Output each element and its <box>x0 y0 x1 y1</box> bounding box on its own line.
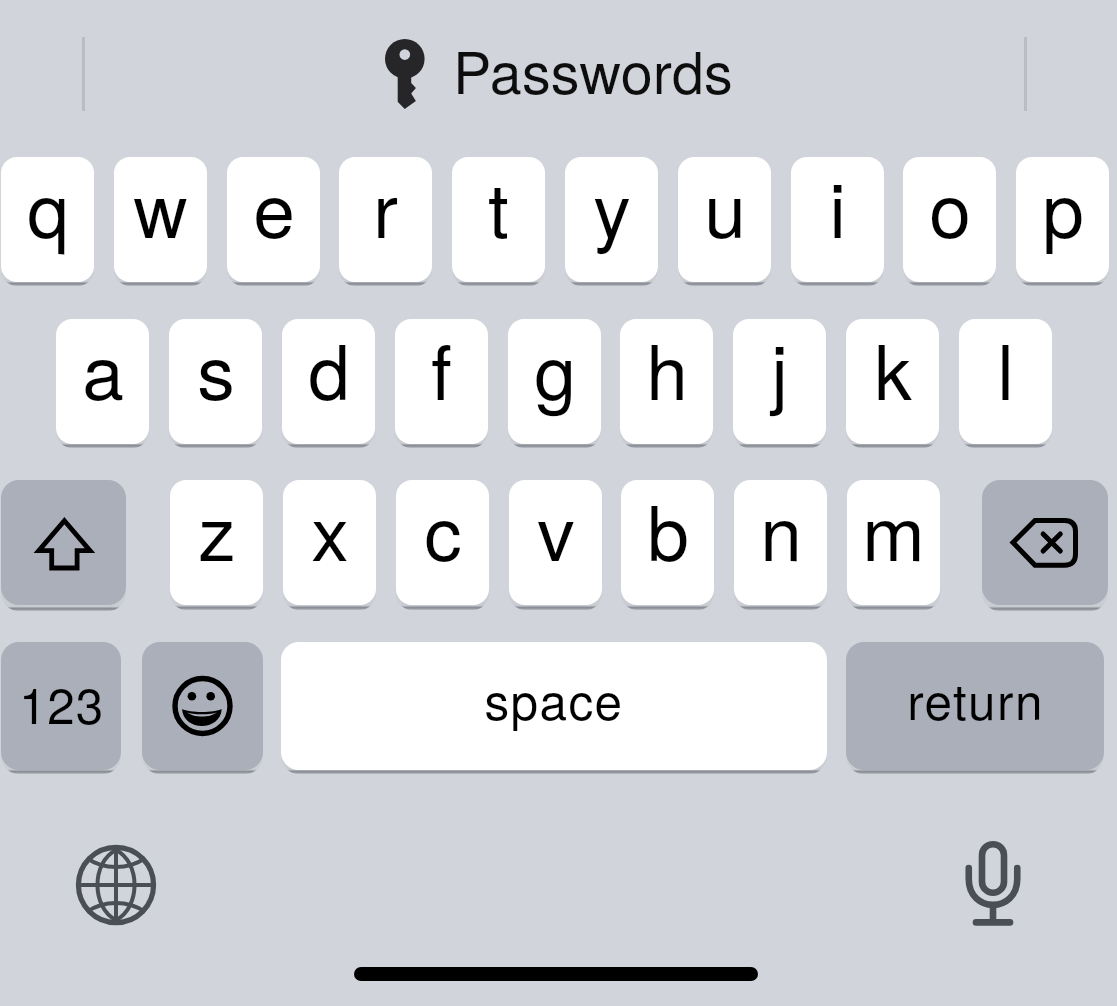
staticText: y <box>593 157 631 259</box>
button[interactable]: return <box>846 642 1104 770</box>
staticText: a <box>82 319 124 421</box>
button[interactable]: o <box>903 157 996 282</box>
staticText: z <box>198 480 236 582</box>
button[interactable]: g <box>508 319 601 444</box>
staticText: h <box>646 319 688 421</box>
staticText: f <box>431 319 452 421</box>
staticText: u <box>704 157 746 259</box>
staticText: t <box>488 157 509 259</box>
staticText: e <box>253 157 295 259</box>
button[interactable]: a <box>56 319 149 444</box>
button[interactable]: l <box>959 319 1052 444</box>
staticText: d <box>308 319 350 421</box>
button[interactable]: i <box>791 157 884 282</box>
button[interactable]: j <box>733 319 826 444</box>
staticText: n <box>760 480 802 582</box>
staticText: k <box>874 319 912 421</box>
staticText: x <box>311 480 349 582</box>
button[interactable]: r <box>339 157 432 282</box>
button[interactable]: z <box>170 480 263 605</box>
button[interactable]: n <box>734 480 827 605</box>
button[interactable]: u <box>678 157 771 282</box>
button[interactable]: t <box>452 157 545 282</box>
staticText: w <box>133 157 188 259</box>
button[interactable]: y <box>565 157 658 282</box>
button[interactable]: Shift <box>1 480 126 605</box>
staticText: g <box>534 319 576 421</box>
button[interactable]: Next keyboard <box>66 835 166 935</box>
button[interactable]: w <box>114 157 207 282</box>
staticText: return <box>907 663 1044 734</box>
button[interactable]: h <box>620 319 713 444</box>
button[interactable]: f <box>395 319 488 444</box>
button[interactable]: q <box>1 157 94 282</box>
staticText: c <box>424 480 462 582</box>
staticText: q <box>27 157 69 259</box>
staticText: Passwords <box>453 28 733 110</box>
staticText: i <box>829 157 846 259</box>
staticText: j <box>771 319 788 421</box>
staticText: b <box>647 480 689 582</box>
button[interactable]: p <box>1016 157 1109 282</box>
staticText: m <box>862 480 925 582</box>
button[interactable]: v <box>509 480 602 605</box>
button[interactable]: 123 <box>1 642 121 770</box>
button[interactable]: e <box>227 157 320 282</box>
staticText: p <box>1042 157 1084 259</box>
staticText: space <box>484 663 624 734</box>
staticText: s <box>197 319 235 421</box>
button[interactable]: s <box>169 319 262 444</box>
staticText: o <box>929 157 971 259</box>
button[interactable]: x <box>283 480 376 605</box>
staticText: v <box>537 480 575 582</box>
button[interactable]: Emoji <box>142 642 263 770</box>
button[interactable]: Passwords <box>370 30 740 118</box>
button[interactable]: Dictation <box>949 832 1037 932</box>
button[interactable]: space <box>281 642 827 770</box>
staticText: 123 <box>19 667 104 738</box>
button[interactable]: Backspace <box>982 480 1108 605</box>
staticText: r <box>373 157 398 259</box>
button[interactable]: b <box>621 480 714 605</box>
button[interactable]: k <box>846 319 939 444</box>
button[interactable]: c <box>396 480 489 605</box>
staticText: l <box>997 319 1014 421</box>
button[interactable]: d <box>282 319 375 444</box>
button[interactable]: m <box>847 480 940 605</box>
